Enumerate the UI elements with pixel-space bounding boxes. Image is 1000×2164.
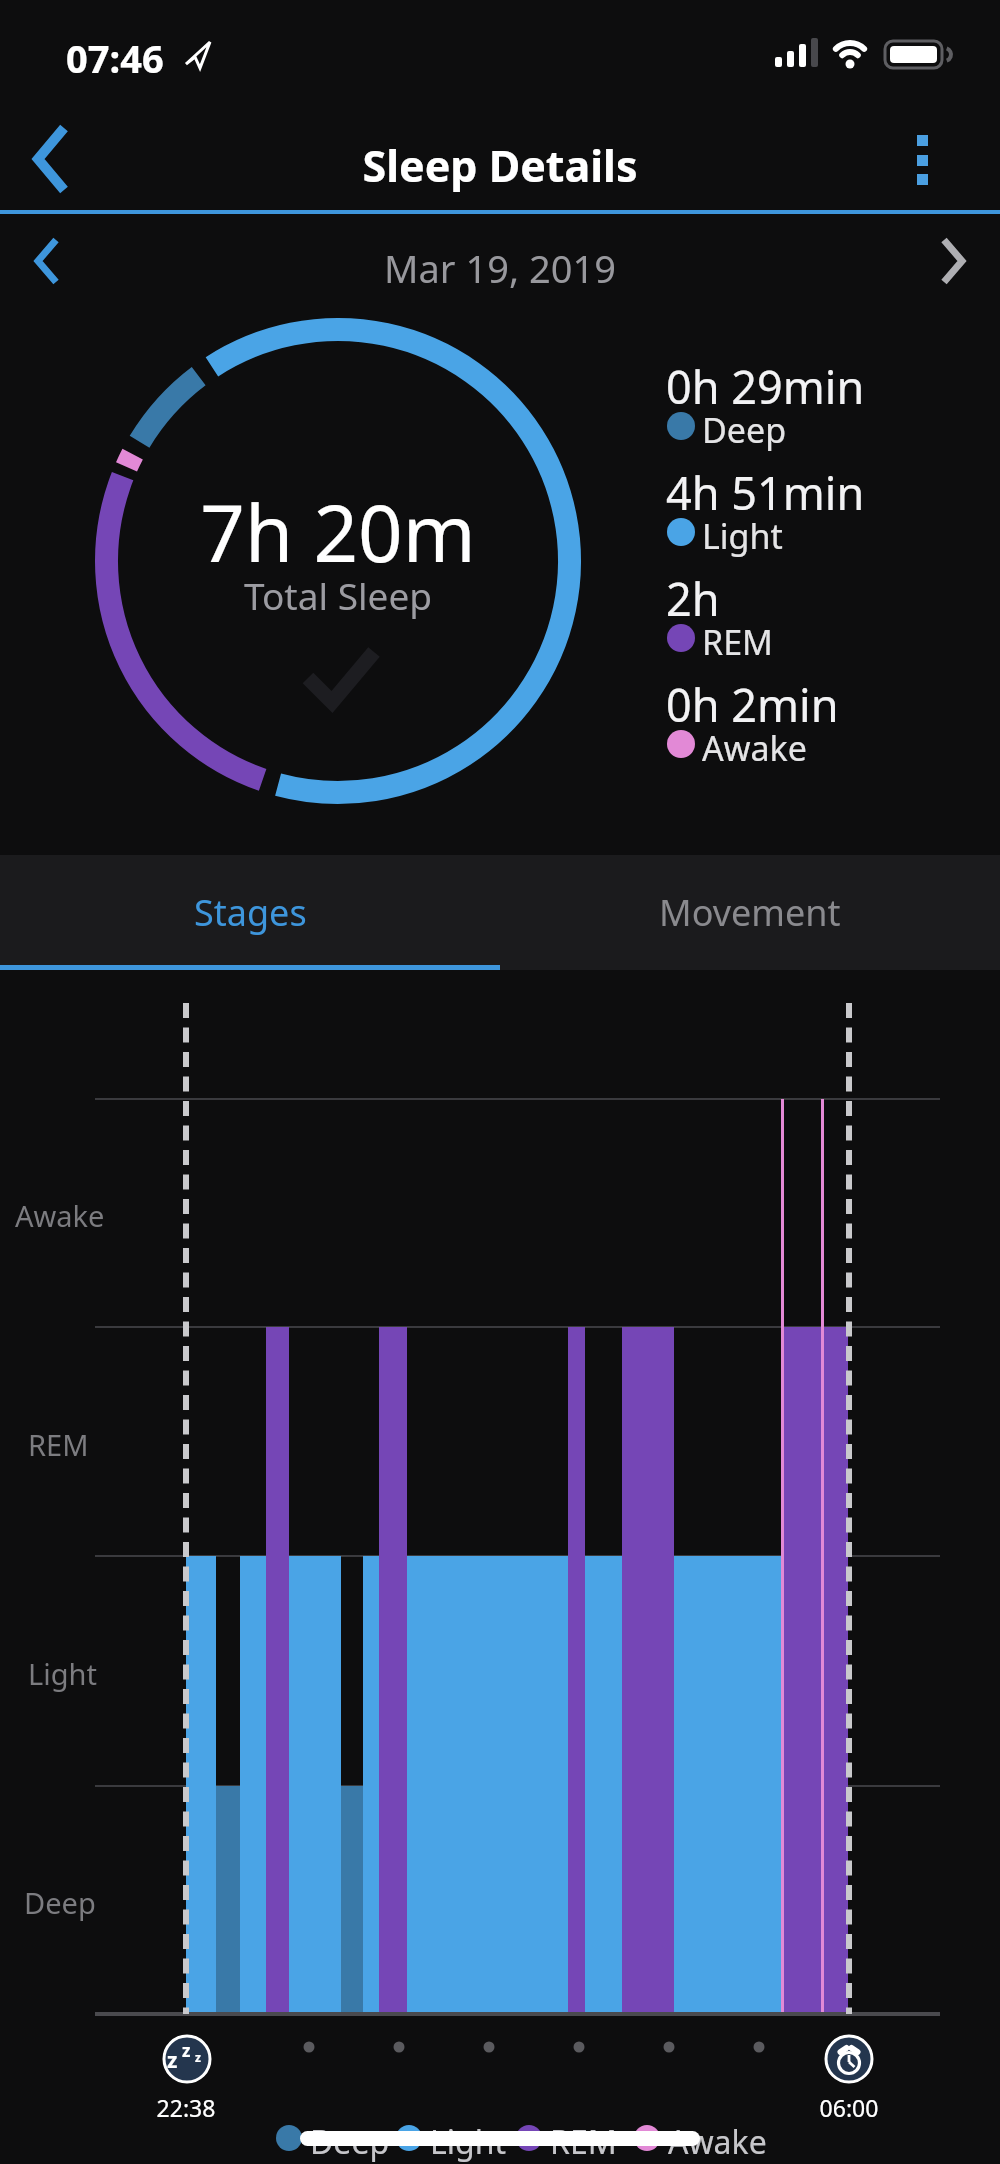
staticText: Deep: [702, 407, 787, 453]
staticText: Awake: [702, 725, 807, 771]
staticText: Stages: [194, 888, 307, 937]
staticText: 0h 29min: [666, 356, 865, 417]
button[interactable]: Movement: [500, 855, 1000, 970]
button[interactable]: [10, 226, 86, 296]
staticText: 4h 51min: [666, 462, 865, 523]
staticText: z: [195, 2049, 201, 2065]
button[interactable]: [14, 116, 84, 202]
staticText: z: [182, 2039, 191, 2062]
staticText: REM: [28, 1425, 89, 1464]
staticText: 06:00: [782, 2092, 916, 2123]
staticText: Sleep Details: [0, 136, 1000, 195]
staticText: Deep: [310, 2120, 390, 2164]
staticText: Awake: [15, 1196, 105, 1235]
staticText: REM: [702, 619, 773, 665]
staticText: 07:46: [66, 32, 164, 84]
button[interactable]: [914, 226, 990, 296]
staticText: Deep: [24, 1883, 96, 1922]
staticText: Movement: [659, 888, 841, 937]
staticText: Mar 19, 2019: [0, 242, 1000, 294]
staticText: Light: [28, 1654, 97, 1693]
staticText: 22:38: [119, 2092, 253, 2123]
staticText: 2h: [666, 568, 720, 629]
button[interactable]: [888, 118, 958, 202]
button[interactable]: Stages: [0, 855, 500, 970]
staticText: REM: [550, 2120, 617, 2164]
staticText: Light: [702, 513, 783, 559]
staticText: Awake: [668, 2120, 767, 2164]
staticText: 0h 2min: [666, 674, 839, 735]
staticText: Total Sleep: [88, 570, 588, 620]
staticText: 7h 20m: [88, 479, 588, 585]
staticText: Light: [430, 2120, 507, 2164]
staticText: z: [167, 2046, 178, 2075]
